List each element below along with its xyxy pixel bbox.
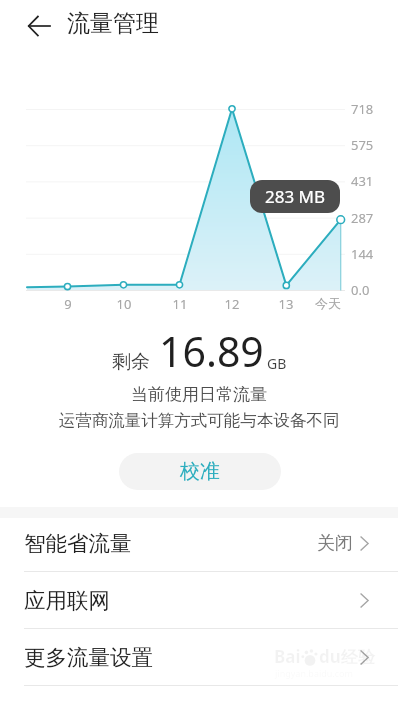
staticText: 9 [51,295,85,313]
staticText: 剩余 [112,350,150,374]
staticText: 144 [351,245,374,263]
staticText: 10 [107,295,141,313]
staticText: 12 [215,295,249,313]
staticText: 应用联网 [24,587,110,614]
staticText: 关闭 [317,532,353,555]
button[interactable]: 校准 [119,453,281,490]
staticText: Bai [274,645,301,668]
button[interactable]: 更多流量设置 [0,629,398,685]
staticText: 今天 [311,295,345,311]
staticText: du [319,645,341,668]
staticText: 更多流量设置 [24,644,153,671]
staticText: 当前使用日常流量 [0,384,398,405]
staticText: 16.89 [159,323,264,379]
button[interactable]: 智能省流量 [0,515,398,571]
staticText: 运营商流量计算方式可能与本设备不同 [0,410,398,431]
staticText: GB [267,354,287,373]
staticText: 校准 [180,459,220,484]
button[interactable]: Back [24,11,54,41]
button[interactable]: 应用联网 [0,572,398,628]
staticText: 287 [351,209,374,227]
staticText: 0.0 [351,281,370,299]
staticText: 11 [163,295,197,313]
staticText: 718 [351,100,374,118]
staticText: 575 [351,136,374,154]
staticText: 13 [269,295,303,313]
staticText: 流量管理 [67,9,159,38]
staticText: 431 [351,172,374,190]
staticText: 智能省流量 [24,530,132,557]
staticText: 283 MB [265,185,326,208]
staticText: 经验 [341,647,375,668]
